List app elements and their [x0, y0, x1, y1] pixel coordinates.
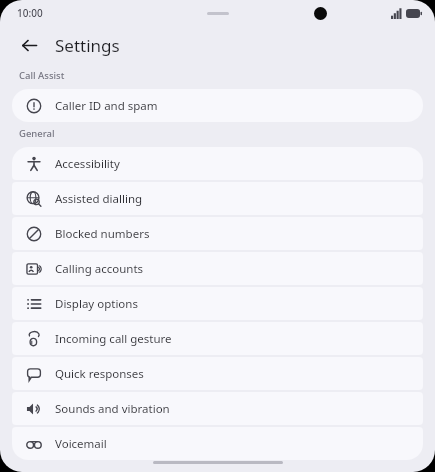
button[interactable]: Sounds and vibration	[12, 392, 423, 425]
button[interactable]: Caller ID and spam	[12, 89, 423, 122]
staticText: Calling accounts	[55, 261, 144, 277]
button[interactable]: Accessibility	[12, 147, 423, 180]
staticText: Assisted dialling	[55, 191, 143, 207]
button[interactable]: Incoming call gesture	[12, 322, 423, 355]
staticText: General	[19, 127, 55, 140]
button[interactable]: Quick responses	[12, 357, 423, 390]
staticText: Display options	[55, 296, 138, 312]
staticText: 10:00	[17, 6, 43, 20]
staticText: Call Assist	[19, 69, 65, 82]
staticText: Sounds and vibration	[55, 401, 170, 417]
staticText: Incoming call gesture	[55, 331, 172, 347]
button[interactable]: Calling accounts	[12, 252, 423, 285]
staticText: Caller ID and spam	[55, 98, 158, 114]
button[interactable]: Blocked numbers	[12, 217, 423, 250]
staticText: Voicemail	[55, 436, 107, 452]
button[interactable]: Display options	[12, 287, 423, 320]
button[interactable]: Back	[12, 28, 46, 62]
staticText: Quick responses	[55, 366, 144, 382]
staticText: Settings	[55, 34, 120, 57]
staticText: Blocked numbers	[55, 226, 150, 242]
button[interactable]: Voicemail	[12, 427, 423, 460]
button[interactable]: Assisted dialling	[12, 182, 423, 215]
staticText: Accessibility	[55, 156, 120, 172]
